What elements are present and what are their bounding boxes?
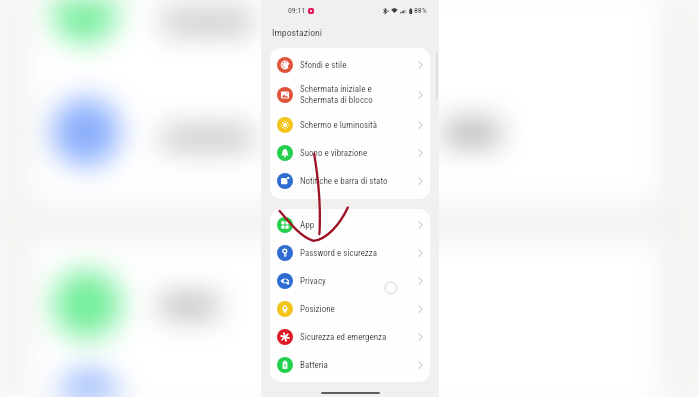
- staticText: Schermata di blocco: [300, 95, 373, 106]
- button[interactable]: Sicurezza ed emergenza: [270, 323, 430, 351]
- staticText: Suono e vibrazione: [300, 148, 368, 159]
- button[interactable]: Schermata iniziale e: [270, 79, 430, 111]
- staticText: App: [300, 220, 315, 231]
- staticText: Batteria: [300, 360, 328, 371]
- staticText: Password e sicurezza: [300, 248, 378, 259]
- staticText: 09:11: [288, 6, 306, 15]
- button[interactable]: Batteria: [270, 351, 430, 379]
- staticText: Schermata iniziale e: [300, 84, 372, 95]
- staticText: 88%: [414, 6, 427, 15]
- staticText: Sicurezza ed emergenza: [300, 332, 387, 343]
- button[interactable]: Password e sicurezza: [270, 239, 430, 267]
- staticText: Notifiche e barra di stato: [300, 176, 388, 187]
- button[interactable]: Sfondi e stile: [270, 51, 430, 79]
- button[interactable]: Schermo e luminosità: [270, 111, 430, 139]
- staticText: Impostazioni: [272, 27, 323, 38]
- staticText: Privacy: [300, 276, 326, 287]
- staticText: Sfondi e stile: [300, 60, 347, 71]
- staticText: Posizione: [300, 304, 335, 315]
- staticText: Schermo e luminosità: [300, 120, 378, 131]
- button[interactable]: Notifiche e barra di stato: [270, 167, 430, 195]
- button[interactable]: Posizione: [270, 295, 430, 323]
- button[interactable]: Privacy: [270, 267, 430, 295]
- button[interactable]: App: [270, 211, 430, 239]
- button[interactable]: Suono e vibrazione: [270, 139, 430, 167]
